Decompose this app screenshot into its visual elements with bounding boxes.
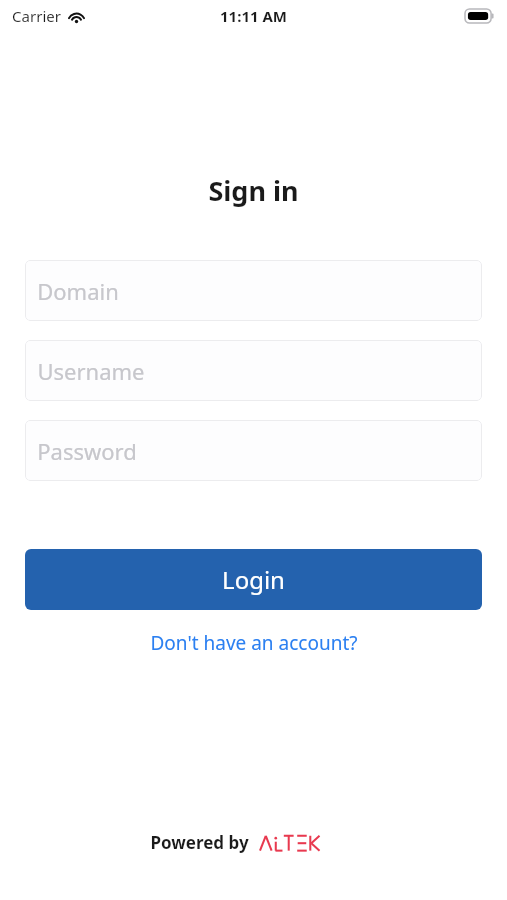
button[interactable]: Domain: [25, 260, 482, 321]
other: Aitek logo: [260, 830, 358, 854]
staticText: Carrier: [12, 6, 61, 26]
staticText: Sign in: [208, 172, 299, 209]
staticText: Powered by: [150, 831, 249, 854]
staticText: Domain: [37, 276, 119, 306]
button[interactable]: Login: [25, 549, 482, 610]
button[interactable]: Don't have an account?: [138, 624, 370, 662]
staticText: 11:11 AM: [220, 6, 287, 26]
button[interactable]: Password: [25, 420, 482, 481]
staticText: Username: [37, 356, 145, 386]
staticText: Login: [222, 563, 285, 596]
staticText: Password: [37, 436, 137, 466]
button[interactable]: Username: [25, 340, 482, 401]
staticText: Don't have an account?: [150, 630, 358, 656]
